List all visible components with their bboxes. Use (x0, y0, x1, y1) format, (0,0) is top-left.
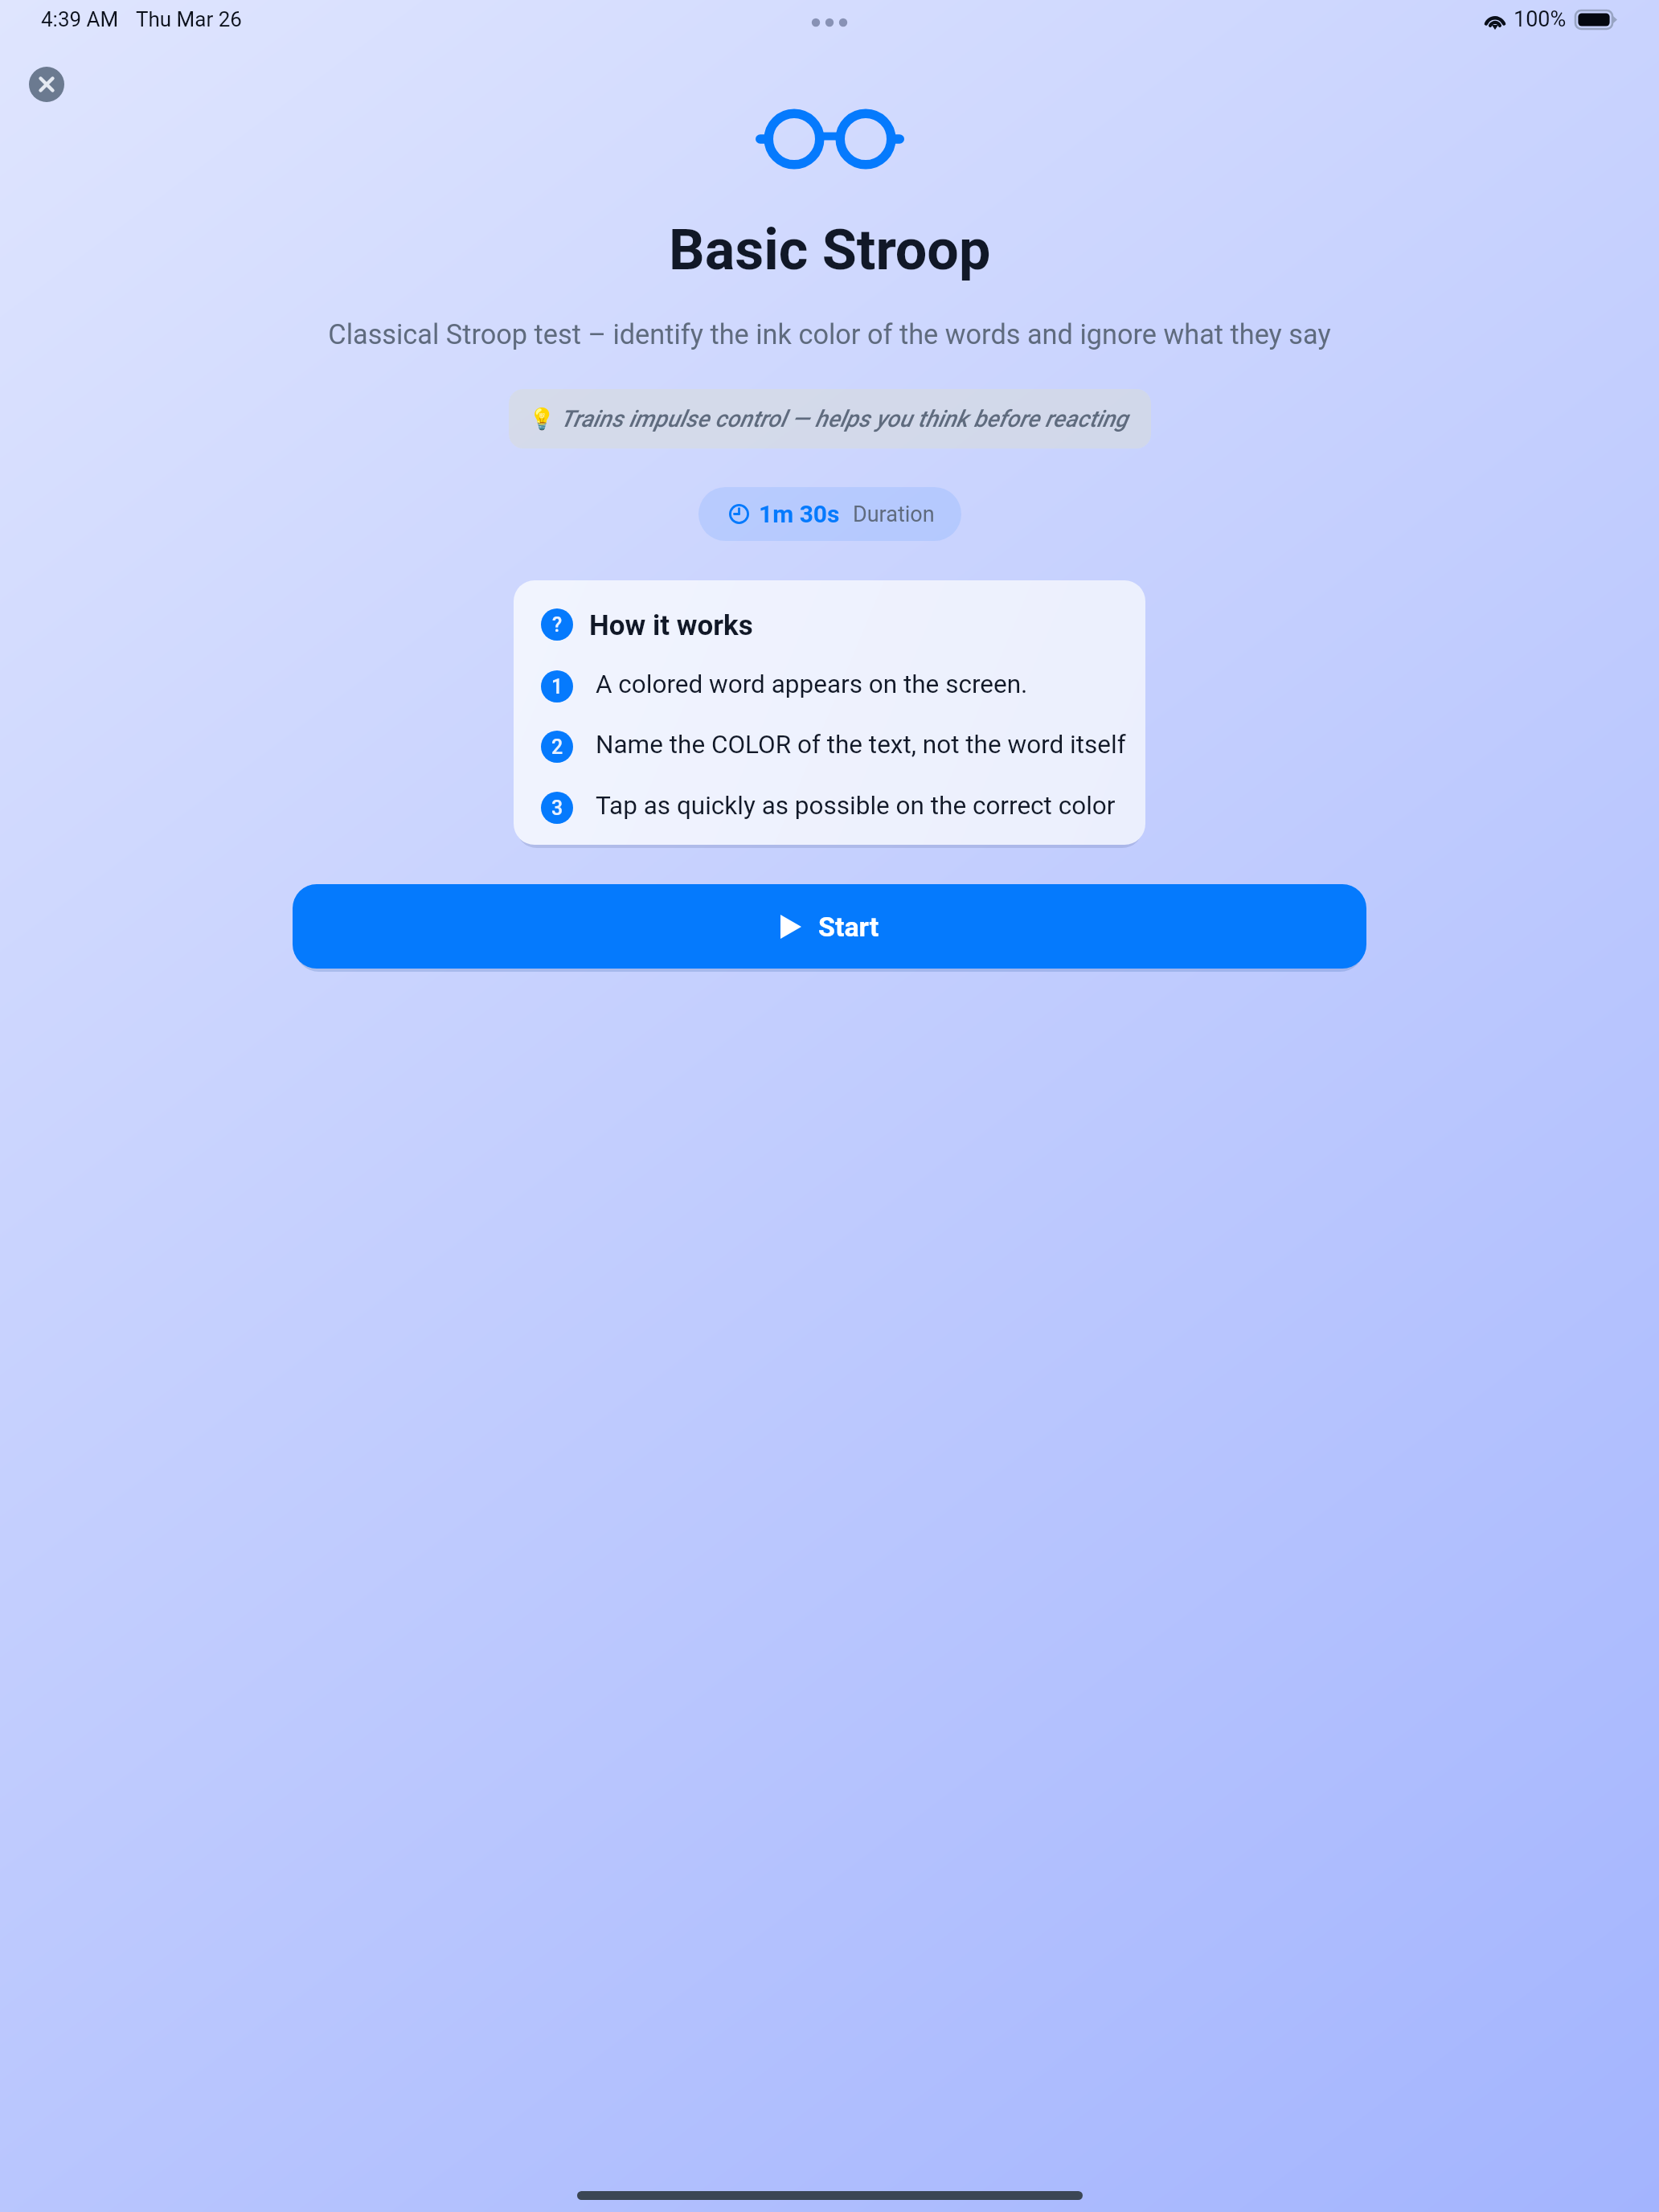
staticText: How it works (589, 609, 753, 642)
staticText: Trains impulse control — helps you think… (560, 405, 1129, 432)
staticText: 💡 (529, 407, 555, 431)
staticText: Name the COLOR of the text, not the word… (596, 730, 1126, 760)
staticText: 4:39 AM (41, 7, 119, 31)
staticText: Tap as quickly as possible on the correc… (596, 791, 1116, 821)
staticText: Classical Stroop test – identify the ink… (328, 318, 1331, 350)
staticText: A colored word appears on the screen. (596, 670, 1028, 699)
button[interactable]: Start (293, 884, 1366, 969)
staticText: 1m 30s (759, 500, 840, 528)
staticText: Basic Stroop (669, 217, 991, 283)
staticText: 3 (551, 797, 563, 820)
staticText: Duration (853, 502, 935, 527)
staticText: 1 (551, 675, 563, 698)
button[interactable]: Close (29, 67, 64, 102)
staticText: 2 (551, 735, 563, 759)
staticText: Thu Mar 26 (136, 7, 242, 31)
staticText: ? (552, 613, 563, 637)
staticText: 100% (1514, 6, 1567, 32)
staticText: Start (818, 911, 879, 943)
